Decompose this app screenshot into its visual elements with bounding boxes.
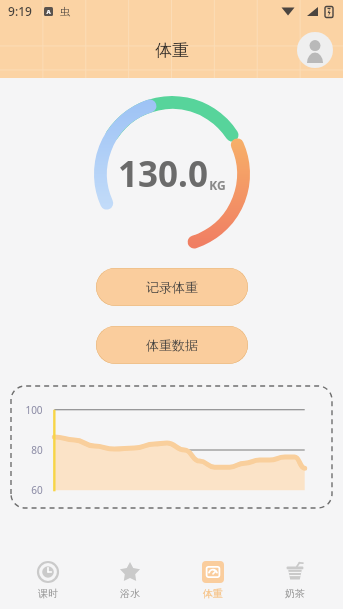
staticText: 记录体重 xyxy=(146,279,198,295)
staticText: A xyxy=(46,8,51,16)
staticText: 体重数据 xyxy=(146,337,198,353)
button[interactable]: 体重数据 xyxy=(96,326,248,364)
button[interactable]: 100 xyxy=(11,386,332,508)
button[interactable]: 记录体重 xyxy=(96,268,248,306)
button[interactable]: 奶茶 xyxy=(260,555,330,606)
staticText: 60 xyxy=(31,483,43,497)
button[interactable]: 浴水 xyxy=(95,555,165,606)
staticText: 虫 xyxy=(60,5,70,18)
staticText: 体重 xyxy=(203,587,223,600)
staticText: 浴水 xyxy=(120,587,140,600)
button[interactable]: 课时 xyxy=(13,555,83,606)
staticText: 课时 xyxy=(38,587,58,600)
staticText: 100 xyxy=(25,403,43,417)
staticText: 130.0 xyxy=(118,150,208,198)
staticText: 80 xyxy=(31,443,43,457)
staticText: KG xyxy=(209,177,226,193)
staticText: 9:19 xyxy=(8,3,32,19)
staticText: 奶茶 xyxy=(285,587,305,600)
staticText: 体重 xyxy=(155,40,189,61)
button[interactable]: 体重 xyxy=(178,555,248,606)
button[interactable]: Profile xyxy=(297,32,333,68)
